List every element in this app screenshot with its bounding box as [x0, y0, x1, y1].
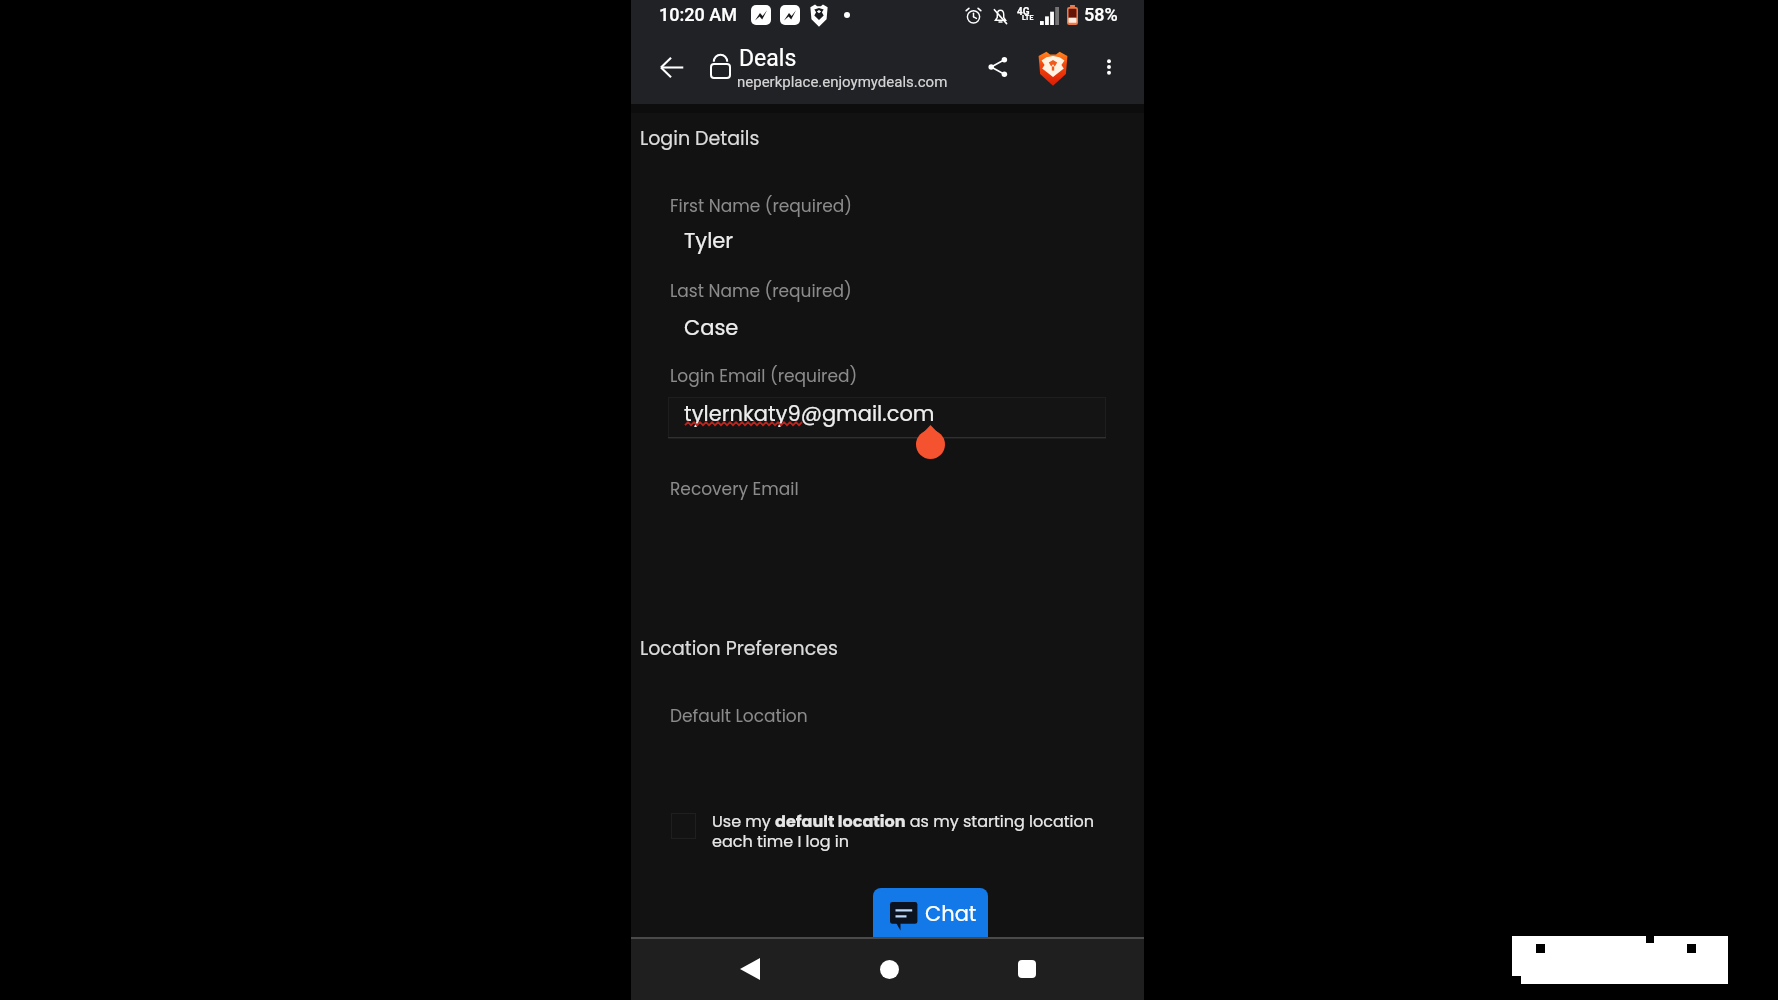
staticText: Deals [739, 45, 797, 72]
button[interactable]: Use my default location as my starting l… [712, 810, 1102, 856]
staticText: Location Preferences [640, 635, 838, 662]
staticText: LTE [1022, 14, 1034, 22]
staticText: Case [684, 313, 739, 342]
button[interactable]: Deals [737, 44, 952, 96]
button[interactable]: Site information [704, 49, 736, 81]
staticText: neperkplace.enjoymydeals.com [737, 73, 948, 91]
button[interactable]: Recent apps [1004, 946, 1050, 992]
button[interactable]: Brave Shields [1031, 46, 1075, 90]
staticText: Login Details [640, 125, 760, 152]
staticText: Default Location [670, 704, 808, 728]
button[interactable]: Home [866, 946, 912, 992]
staticText: Use my default location as my starting l… [712, 810, 1102, 852]
staticText: First Name (required) [670, 194, 852, 218]
button[interactable]: Share [976, 45, 1020, 89]
staticText: Tyler [684, 226, 734, 255]
button[interactable]: Use my default location [671, 813, 696, 839]
button[interactable]: Back [727, 946, 773, 992]
staticText: Recovery Email [670, 477, 799, 501]
button[interactable]: Chat [873, 888, 988, 940]
button[interactable] [668, 397, 1106, 439]
staticText: 10:20 AM [659, 4, 737, 25]
staticText: 4G [1017, 6, 1030, 18]
staticText: tylernkaty9@gmail.com [684, 399, 935, 428]
staticText: 58% [1084, 4, 1118, 25]
staticText: Chat [925, 899, 977, 928]
button[interactable]: Back [648, 43, 696, 91]
button[interactable]: More options [1087, 45, 1131, 89]
staticText: Last Name (required) [670, 279, 852, 303]
staticText: Login Email (required) [670, 364, 858, 388]
